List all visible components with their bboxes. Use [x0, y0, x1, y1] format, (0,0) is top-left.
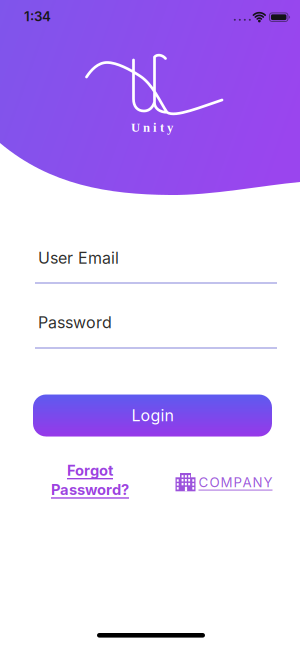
staticText: U n i t y [131, 120, 173, 134]
staticText: Password? [51, 481, 129, 498]
button[interactable]: Forgot [51, 462, 129, 498]
staticText: Password [38, 313, 112, 332]
button[interactable]: Login [33, 394, 272, 436]
button[interactable]: COMPANY [175, 472, 272, 492]
staticText: User Email [38, 249, 119, 267]
textField[interactable]: User Email [38, 249, 300, 267]
staticText: Login [131, 406, 173, 425]
staticText: 1:34 [24, 9, 51, 24]
staticText: COMPANY [198, 475, 272, 490]
textField[interactable]: Password [38, 313, 300, 332]
staticText: Forgot [67, 462, 113, 479]
